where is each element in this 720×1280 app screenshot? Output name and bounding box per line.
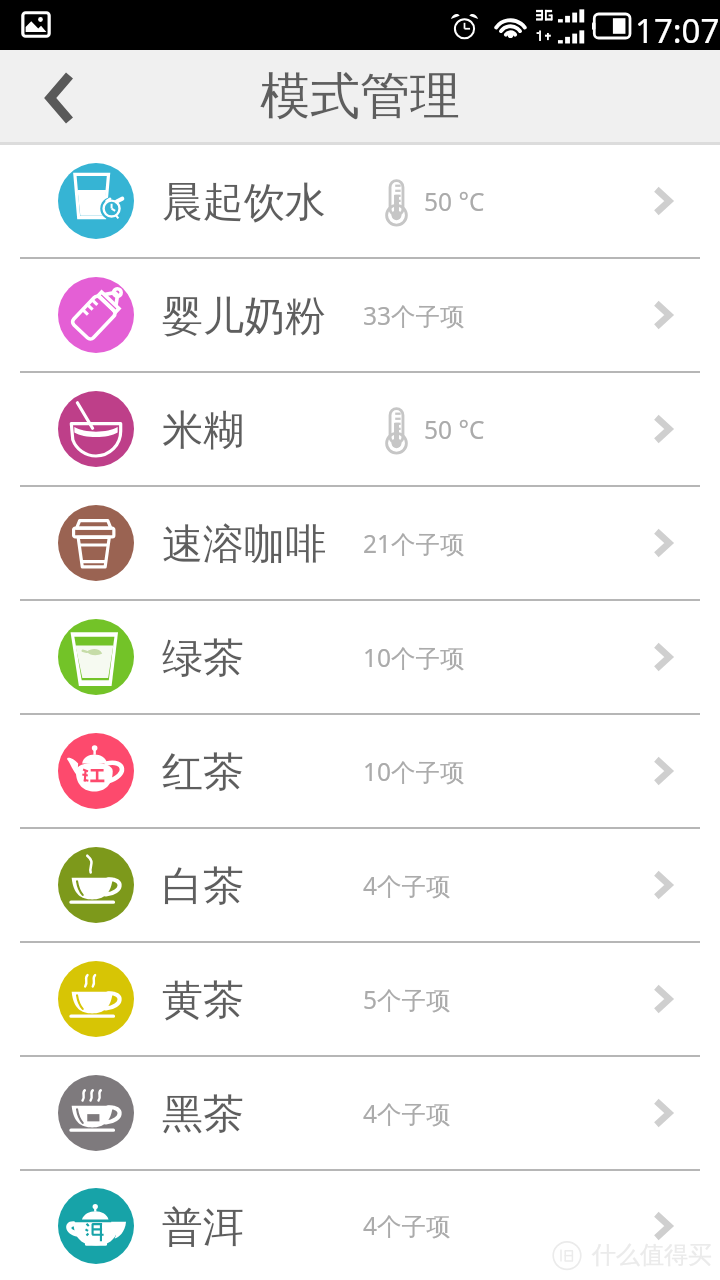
other: Open [650,754,678,788]
staticText: 绿茶 [162,633,244,685]
staticText: 21个子项 [363,527,465,560]
staticText: 4个子项 [363,1097,451,1130]
other: Open [650,868,678,902]
button[interactable]: 黑茶 [0,1057,720,1169]
staticText: 黄茶 [162,975,244,1027]
staticText: 黑茶 [162,1089,244,1141]
staticText: 米糊 [162,405,244,457]
staticText: 50 °C [424,413,485,446]
button[interactable]: 红茶 [0,715,720,827]
staticText: 白茶 [162,861,244,913]
button[interactable]: 速溶咖啡 [0,487,720,599]
other: Open [650,526,678,560]
button[interactable]: 黄茶 [0,943,720,1055]
staticText: 晨起饮水 [162,177,326,229]
staticText: 普洱 [162,1202,244,1254]
staticText: 10个子项 [363,641,465,674]
other: Open [650,298,678,332]
button[interactable]: 白茶 [0,829,720,941]
button[interactable]: Back [0,50,114,142]
staticText: 33个子项 [363,299,465,332]
staticText: 什么值得买 [592,1240,712,1270]
staticText: 速溶咖啡 [162,519,326,571]
staticText: 模式管理 [260,65,460,128]
button[interactable]: 米糊 [0,373,720,485]
staticText: 婴儿奶粉 [162,291,326,343]
other: Open [650,1209,678,1243]
button[interactable]: 婴儿奶粉 [0,259,720,371]
staticText: 5个子项 [363,983,451,1016]
button[interactable]: 普洱 [0,1171,720,1280]
staticText: 4个子项 [363,1209,451,1242]
staticText: 红茶 [162,747,244,799]
staticText: 17:07 [635,8,720,53]
button[interactable]: 绿茶 [0,601,720,713]
other: Open [650,640,678,674]
staticText: 4个子项 [363,869,451,902]
other: Open [650,412,678,446]
other: Open [650,1096,678,1130]
other: Open [650,184,678,218]
staticText: 10个子项 [363,755,465,788]
staticText: 50 °C [424,185,485,218]
button[interactable]: 晨起饮水 [0,145,720,257]
other: Open [650,982,678,1016]
